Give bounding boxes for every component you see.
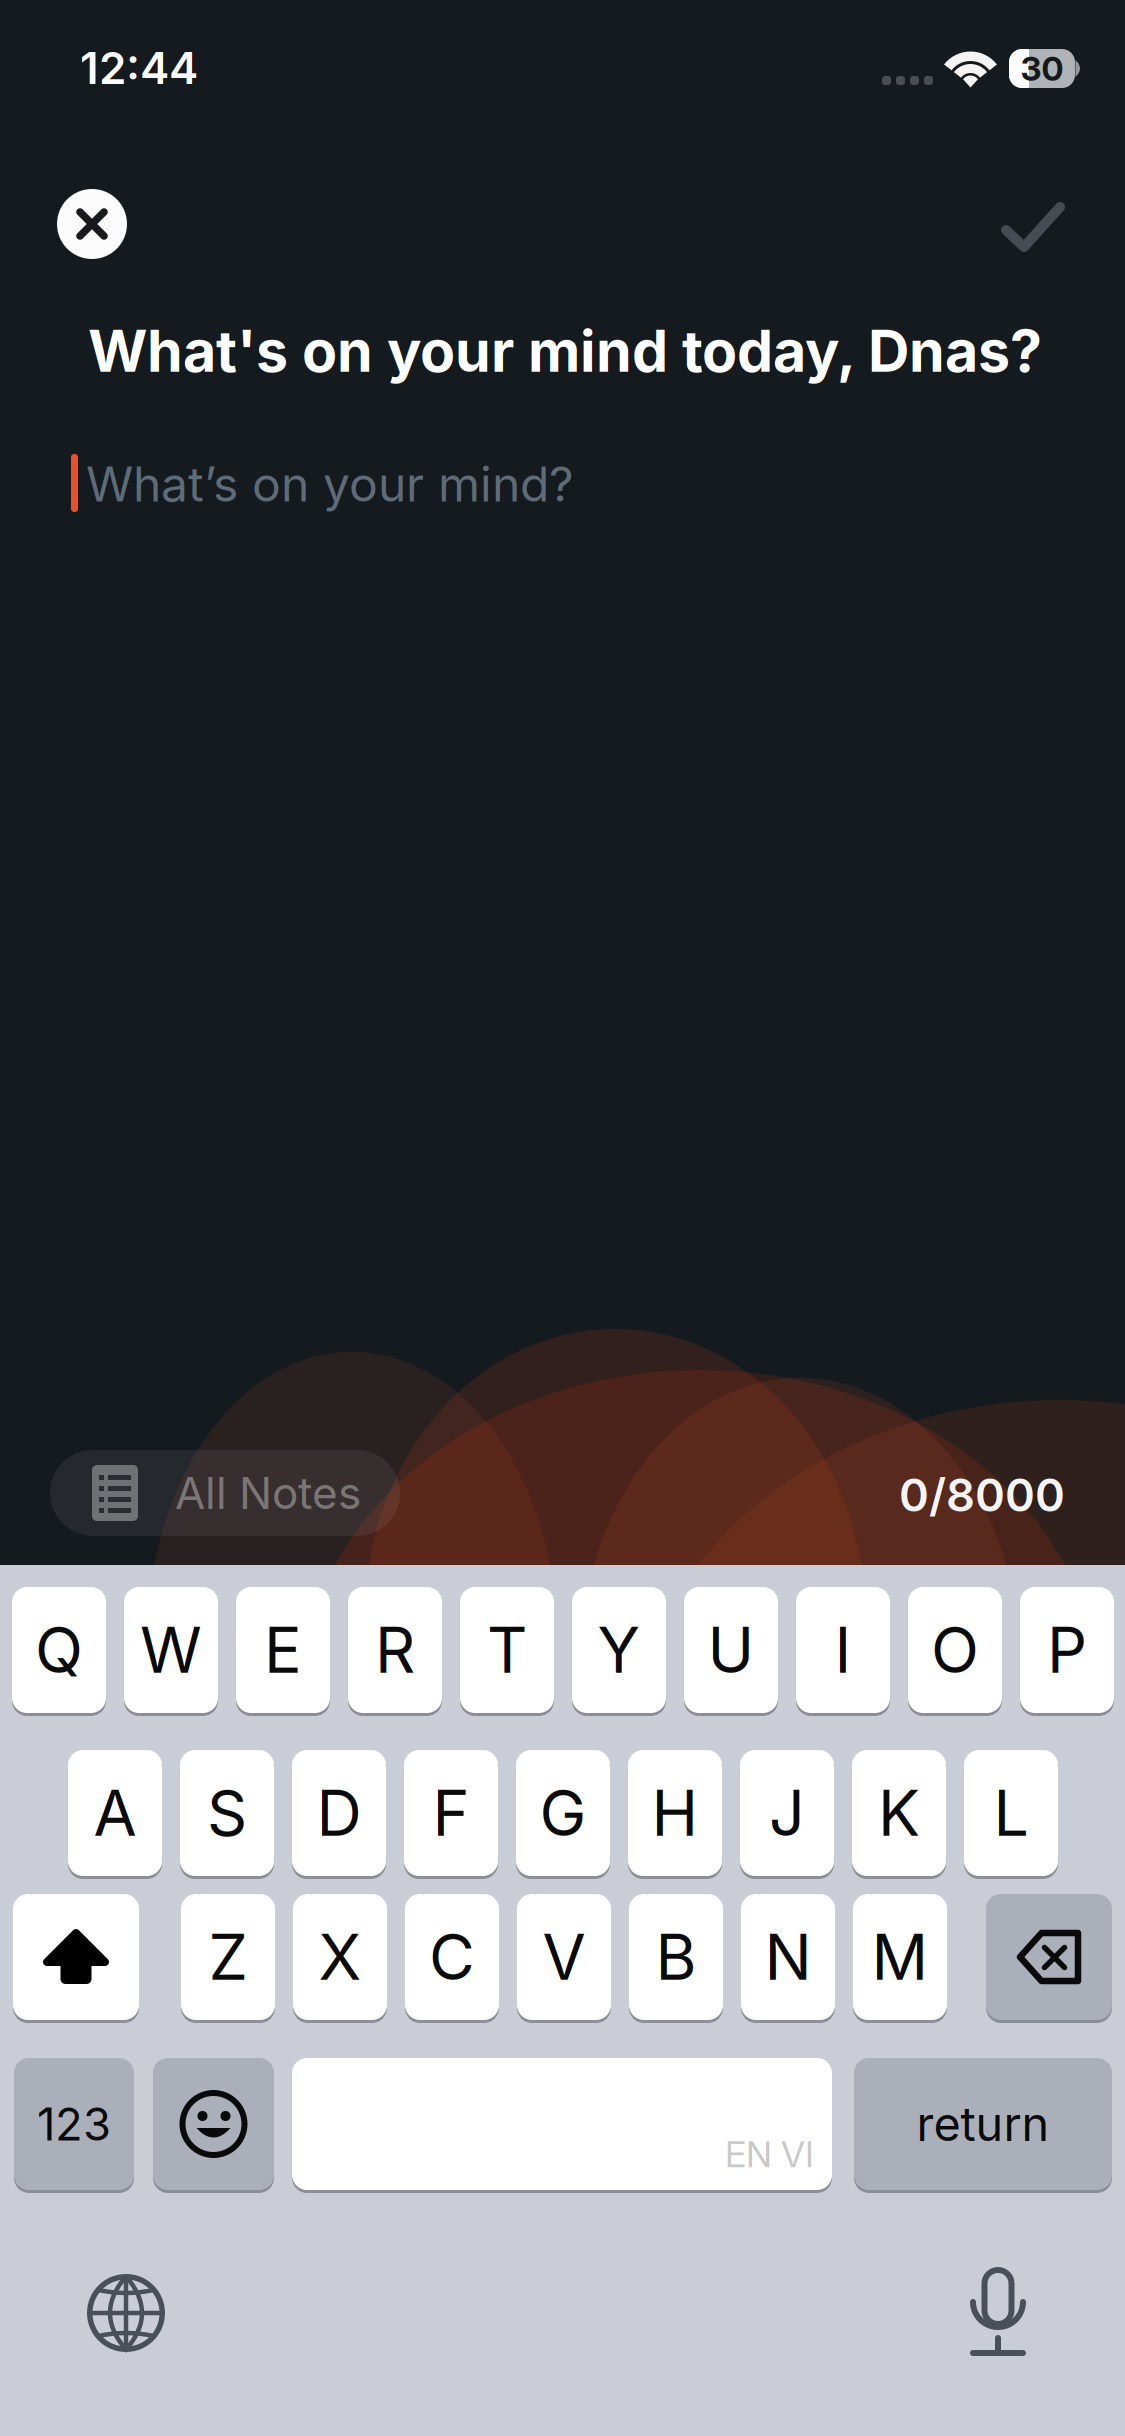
button[interactable]: I	[796, 1587, 890, 1713]
staticText: return	[916, 2096, 1049, 2152]
button[interactable]: E	[236, 1587, 330, 1713]
button[interactable]: Next keyboard	[87, 2274, 165, 2352]
staticText: What’s on your mind?	[86, 455, 574, 513]
staticText: N	[764, 1919, 811, 1995]
button[interactable]: Q	[12, 1587, 106, 1713]
button[interactable]: D	[292, 1750, 386, 1876]
staticText: M	[871, 1919, 928, 1995]
staticText: 123	[37, 2097, 111, 2151]
staticText: B	[655, 1919, 696, 1995]
button[interactable]: Dictate	[970, 2270, 1026, 2356]
button[interactable]: S	[180, 1750, 274, 1876]
staticText: What's on your mind today, Dnas?	[88, 316, 1042, 386]
staticText: U	[707, 1612, 754, 1688]
staticText: E	[264, 1612, 302, 1688]
button[interactable]: Y	[572, 1587, 666, 1713]
staticText: G	[539, 1775, 586, 1851]
staticText: W	[140, 1612, 202, 1688]
button[interactable]: U	[684, 1587, 778, 1713]
staticText: P	[1047, 1612, 1087, 1688]
staticText: L	[993, 1775, 1028, 1851]
button[interactable]: O	[908, 1587, 1002, 1713]
button[interactable]: Shift	[13, 1894, 139, 2020]
button[interactable]: return	[854, 2058, 1112, 2190]
staticText: R	[375, 1612, 415, 1688]
button[interactable]: W	[124, 1587, 218, 1713]
staticText: 30	[1020, 48, 1063, 89]
button[interactable]: Done	[978, 179, 1088, 275]
staticText: A	[93, 1775, 136, 1851]
staticText: S	[207, 1775, 247, 1851]
button[interactable]: Close	[44, 176, 140, 272]
button[interactable]: M	[853, 1894, 947, 2020]
staticText: Q	[35, 1612, 83, 1688]
button[interactable]: A	[68, 1750, 162, 1876]
button[interactable]: C	[405, 1894, 499, 2020]
button[interactable]: X	[293, 1894, 387, 2020]
staticText: X	[318, 1919, 361, 1995]
button[interactable]: Space	[292, 2058, 832, 2190]
button[interactable]: R	[348, 1587, 442, 1713]
button[interactable]: B	[629, 1894, 723, 2020]
staticText: All Notes	[175, 1466, 361, 1520]
staticText: V	[542, 1919, 585, 1995]
staticText: H	[651, 1775, 698, 1851]
staticText: F	[432, 1775, 469, 1851]
button[interactable]: V	[517, 1894, 611, 2020]
button[interactable]: F	[404, 1750, 498, 1876]
button[interactable]: All Notes	[50, 1450, 400, 1536]
button[interactable]: 123	[14, 2058, 134, 2190]
staticText: Z	[208, 1919, 247, 1995]
staticText: K	[878, 1775, 920, 1851]
button[interactable]: L	[964, 1750, 1058, 1876]
staticText: O	[931, 1612, 979, 1688]
button[interactable]: Emoji	[153, 2058, 274, 2190]
staticText: Y	[597, 1612, 640, 1688]
button[interactable]: Delete	[986, 1894, 1112, 2020]
button[interactable]: T	[460, 1587, 554, 1713]
staticText: I	[834, 1612, 851, 1688]
button[interactable]: Z	[181, 1894, 275, 2020]
button[interactable]: J	[740, 1750, 834, 1876]
staticText: D	[316, 1775, 361, 1851]
button[interactable]: K	[852, 1750, 946, 1876]
button[interactable]: P	[1020, 1587, 1114, 1713]
staticText: J	[769, 1775, 805, 1851]
staticText: C	[429, 1919, 475, 1995]
staticText: EN VI	[725, 2132, 814, 2176]
staticText: 0/8000	[899, 1468, 1065, 1522]
button[interactable]: H	[628, 1750, 722, 1876]
button[interactable]: G	[516, 1750, 610, 1876]
button[interactable]: N	[741, 1894, 835, 2020]
staticText: 12:44	[80, 41, 198, 95]
staticText: T	[487, 1612, 527, 1688]
